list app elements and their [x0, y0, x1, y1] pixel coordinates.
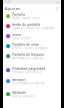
staticText: Ubicación	[12, 91, 26, 94]
button[interactable]: Fondo de pantalla	[3, 23, 61, 33]
staticText: Pantalla de inicio	[12, 43, 39, 46]
staticText: Privacidad y seguridad	[12, 67, 45, 70]
staticText: Temas	[12, 33, 21, 36]
staticText: Color y estilo	[12, 36, 31, 40]
button[interactable]: Pantalla de inicio	[3, 43, 61, 53]
staticText: Brillo, modo oscuro	[12, 16, 40, 20]
button[interactable]: Pantalla	[3, 13, 61, 23]
staticText: 9:41	[5, 0, 12, 4]
staticText: Acceso y servicios	[12, 94, 35, 98]
staticText: Permisos y protección	[12, 70, 42, 74]
button[interactable]: Pantalla de bloqueo	[3, 53, 61, 67]
staticText: Ajustes	[5, 6, 20, 11]
staticText: Cambia el fondo de la pantalla	[12, 26, 54, 30]
button[interactable]: Search	[56, 7, 59, 10]
staticText: Fondo de pantalla	[12, 23, 40, 26]
button[interactable]: Ubicación	[3, 91, 61, 101]
staticText: Pantalla	[12, 13, 25, 16]
staticText: ▃▃ ▮	[56, 1, 59, 3]
staticText: Diseño, iconos, animación	[12, 46, 48, 50]
button[interactable]: Temas	[3, 33, 61, 43]
staticText: Pantalla de bloqueo	[12, 53, 44, 56]
staticText: Notificaciones y accesos	[12, 56, 43, 60]
button[interactable]: Mensajes	[3, 78, 61, 91]
staticText: Conversaciones y alertas	[12, 81, 44, 85]
staticText: Mensajes	[12, 78, 25, 81]
button[interactable]: Privacidad y seguridad	[3, 67, 61, 78]
